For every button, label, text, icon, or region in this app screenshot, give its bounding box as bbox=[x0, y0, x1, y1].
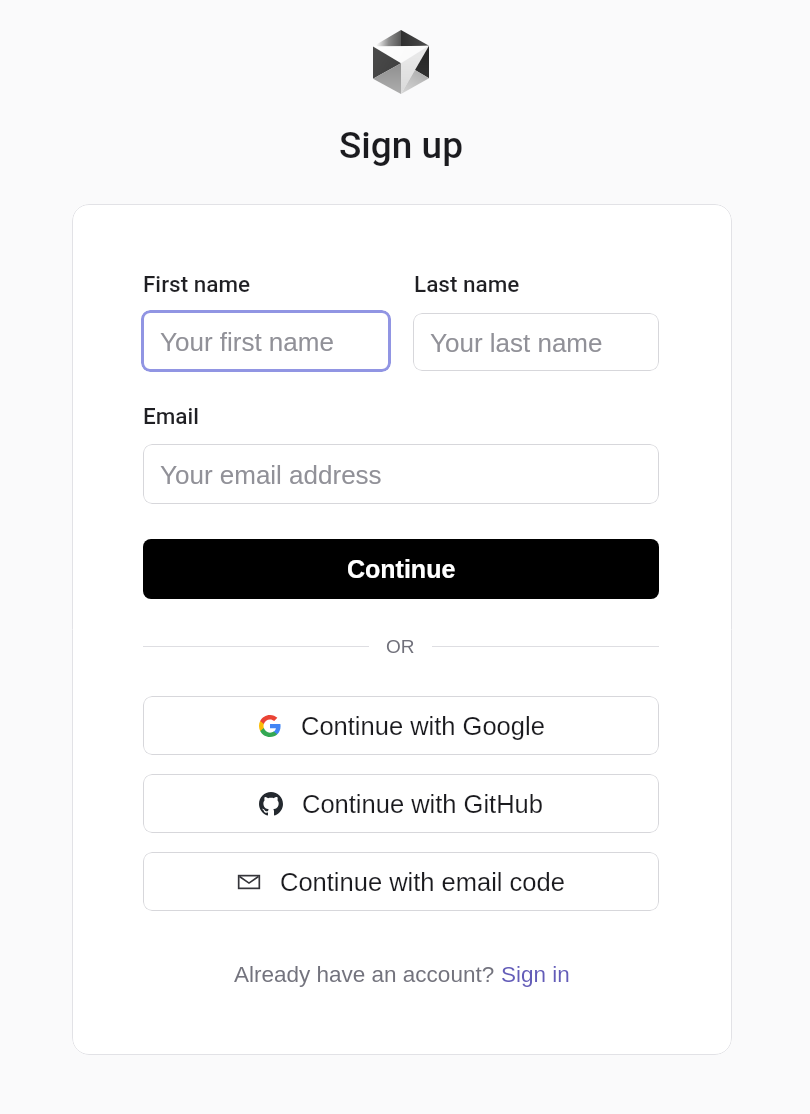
button[interactable]: Your first name bbox=[141, 310, 391, 372]
staticText: Email bbox=[143, 403, 200, 429]
staticText: Your last name bbox=[430, 328, 603, 357]
staticText: Last name bbox=[414, 271, 520, 297]
staticText: Continue with email code bbox=[280, 868, 565, 896]
other: App logo bbox=[373, 30, 429, 94]
button[interactable]: Sign in bbox=[501, 962, 570, 987]
staticText: Sign up bbox=[339, 124, 463, 167]
staticText: Already have an account? bbox=[234, 962, 501, 987]
button[interactable]: Continue with Google bbox=[143, 696, 659, 755]
button[interactable]: Your email address bbox=[143, 444, 659, 504]
staticText: Your first name bbox=[160, 327, 334, 356]
staticText: Continue with GitHub bbox=[302, 790, 543, 818]
button[interactable]: Continue bbox=[143, 539, 659, 599]
button[interactable]: Your last name bbox=[413, 313, 659, 371]
staticText: Continue bbox=[347, 555, 456, 583]
staticText: OR bbox=[386, 636, 415, 657]
staticText: First name bbox=[143, 271, 251, 297]
staticText: Continue with Google bbox=[301, 712, 545, 740]
button[interactable]: Continue with GitHub bbox=[143, 774, 659, 833]
staticText: Your email address bbox=[160, 460, 382, 489]
button[interactable]: Continue with email code bbox=[143, 852, 659, 911]
staticText: Sign in bbox=[501, 962, 570, 987]
